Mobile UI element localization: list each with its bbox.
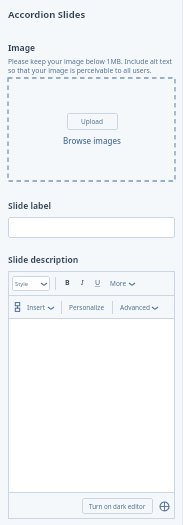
staticText: U [95,278,101,288]
button[interactable]: Accessibility options [159,501,170,512]
button[interactable]: Style [12,276,50,291]
button[interactable] [14,302,21,312]
button[interactable]: U [93,278,103,288]
button[interactable]: Turn on dark editor [82,498,153,514]
button[interactable]: Upload [8,78,175,181]
staticText: Slide label [8,200,52,212]
staticText: I [81,278,84,288]
button[interactable] [8,319,175,492]
staticText: Personalize [69,303,105,312]
button[interactable]: Browse images [63,135,121,146]
staticText: Accordion Slides [8,8,86,21]
button[interactable]: More [110,279,135,288]
button[interactable]: I [79,278,86,288]
staticText: B [65,278,70,288]
staticText: Advanced [120,303,150,312]
staticText: Please keep your image below 1MB. Includ… [8,57,175,75]
staticText: Image [8,42,36,54]
button[interactable]: Personalize [69,303,105,312]
button[interactable]: Advanced [120,303,158,312]
staticText: Slide description [8,254,79,266]
button[interactable]: Insert [27,303,54,312]
staticText: Turn on dark editor [89,502,146,510]
staticText: Browse images [63,135,121,146]
button[interactable]: Upload [67,113,118,130]
button[interactable] [8,217,175,238]
staticText: Upload [81,117,104,126]
staticText: Style [15,280,28,288]
staticText: Insert [27,303,46,312]
staticText: More [110,279,127,288]
button[interactable]: B [63,278,72,288]
